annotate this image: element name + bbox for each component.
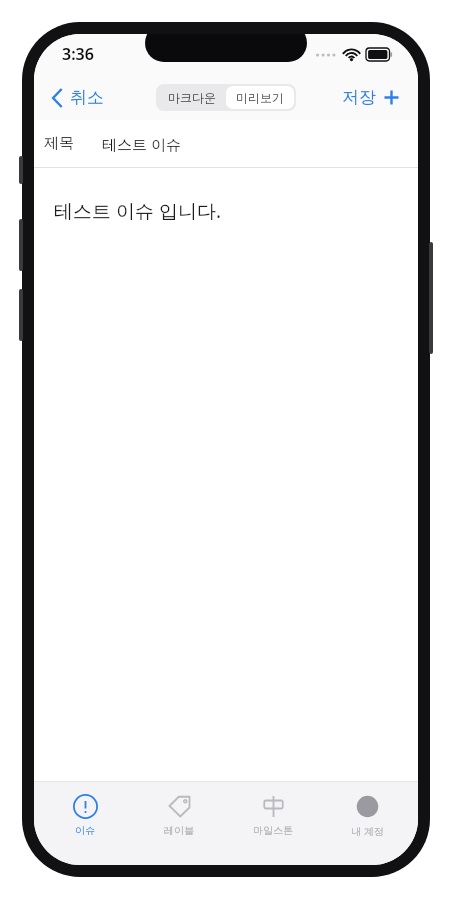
staticText: 마크다운 bbox=[168, 90, 216, 105]
staticText: 마일스톤 bbox=[253, 824, 293, 837]
staticText: 취소 bbox=[70, 87, 104, 108]
staticText: 내 계정 bbox=[351, 824, 384, 838]
staticText: 레이블 bbox=[164, 824, 194, 837]
button[interactable]: 제목 bbox=[34, 120, 418, 167]
staticText: 이슈 bbox=[75, 824, 95, 837]
button[interactable]: 이슈 bbox=[42, 790, 128, 841]
button[interactable]: 마일스톤 bbox=[230, 790, 316, 841]
button[interactable]: 취소 bbox=[34, 81, 112, 114]
staticText: 테스트 이슈 입니다. bbox=[54, 198, 221, 224]
button[interactable]: 미리보기 bbox=[226, 86, 294, 109]
staticText: 저장 bbox=[342, 87, 376, 108]
button[interactable]: 저장 bbox=[334, 81, 418, 114]
button[interactable]: 내 계정 bbox=[324, 790, 410, 842]
staticText: 미리보기 bbox=[236, 90, 284, 105]
staticText: 3:36 bbox=[62, 43, 94, 65]
button[interactable]: 마크다운 bbox=[158, 86, 226, 109]
button[interactable]: 레이블 bbox=[136, 790, 222, 841]
staticText: 제목 bbox=[44, 134, 74, 153]
staticText: 테스트 이슈 bbox=[102, 134, 181, 154]
